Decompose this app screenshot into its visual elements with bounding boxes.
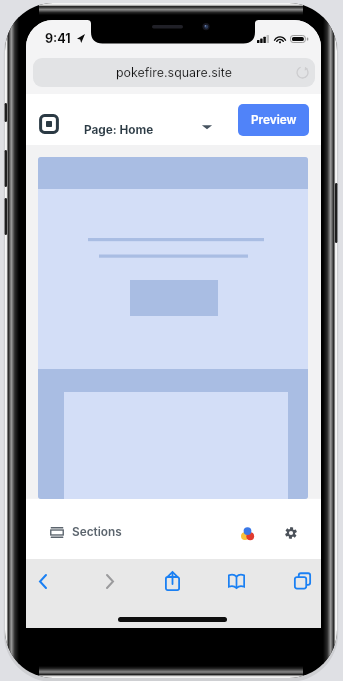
button[interactable]: pokefire.square.site — [33, 58, 315, 87]
button[interactable]: Theme colors — [241, 527, 254, 540]
button[interactable]: Sections — [50, 525, 122, 539]
button[interactable]: Bookmarks — [219, 564, 253, 598]
staticText: pokefire.square.site — [116, 65, 232, 80]
button[interactable]: Preview — [238, 104, 309, 136]
staticText: Sections — [72, 525, 122, 539]
button[interactable]: Settings — [285, 527, 297, 539]
button[interactable]: Site editor — [39, 114, 59, 134]
button[interactable]: Forward — [93, 564, 127, 598]
staticText: 9:41 — [45, 31, 71, 46]
button[interactable]: Choose page — [196, 116, 218, 138]
button[interactable]: Tabs — [285, 564, 319, 598]
button[interactable]: Back — [26, 564, 60, 598]
staticText: Preview — [251, 113, 297, 127]
button[interactable]: Share — [155, 564, 189, 598]
staticText: Page: Home — [84, 123, 154, 137]
